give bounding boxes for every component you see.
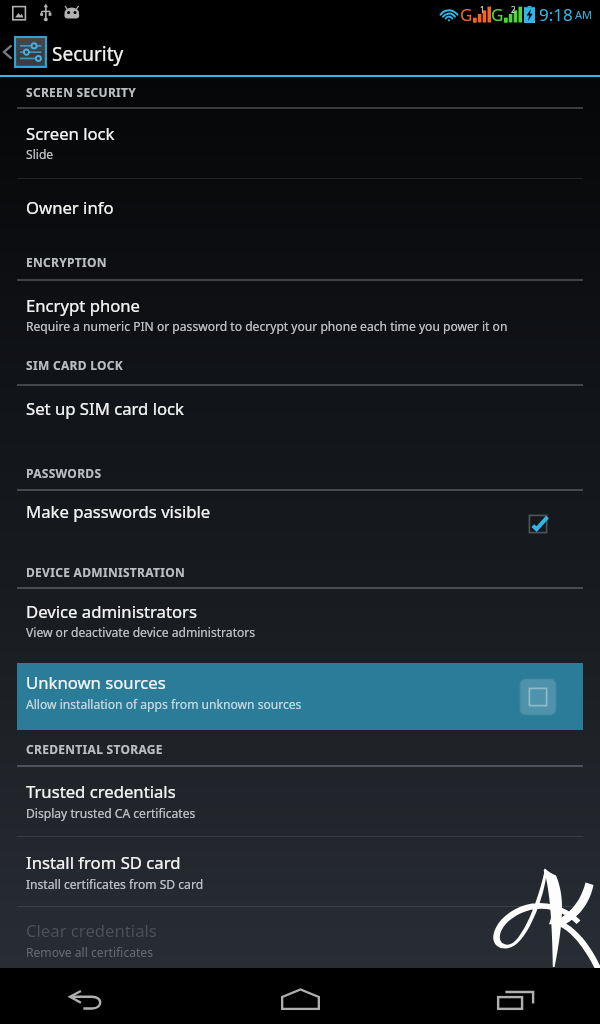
staticText: Display trusted CA certificates [26, 805, 196, 821]
staticText: Security [52, 41, 124, 67]
staticText: Set up SIM card lock [26, 397, 184, 420]
button[interactable] [0, 178, 600, 240]
staticText: SCREEN SECURITY [26, 84, 137, 100]
button[interactable] [0, 386, 600, 450]
button[interactable] [0, 281, 600, 344]
staticText: Remove all certificates [26, 944, 153, 960]
staticText: Install from SD card [26, 851, 181, 874]
button[interactable]: Home [235, 968, 365, 1024]
staticText: 1 [480, 4, 485, 15]
staticText: CREDENTIAL STORAGE [26, 741, 163, 757]
staticText: Trusted credentials [26, 780, 176, 803]
staticText: Install certificates from SD card [26, 876, 204, 892]
button[interactable]: Make passwords visible [514, 500, 562, 548]
staticText: 9:18 [539, 3, 573, 26]
button[interactable] [17, 663, 583, 730]
staticText: Clear credentials [26, 919, 157, 942]
button[interactable]: Unknown sources [514, 673, 562, 721]
staticText: Device administrators [26, 600, 197, 623]
staticText: Allow installation of apps from unknown … [26, 696, 302, 712]
button[interactable] [0, 589, 600, 656]
staticText: PASSWORDS [26, 465, 102, 481]
staticText: Encrypt phone [26, 294, 141, 317]
button[interactable] [0, 490, 600, 552]
button[interactable] [0, 908, 600, 967]
button[interactable]: Recent apps [450, 968, 580, 1024]
staticText: Owner info [26, 196, 114, 219]
button[interactable]: Navigate up, Security [0, 28, 200, 75]
staticText: Slide [26, 146, 54, 162]
staticText: Unknown sources [26, 671, 166, 694]
staticText: Require a numeric PIN or password to dec… [26, 318, 508, 334]
staticText: Screen lock [26, 122, 115, 145]
staticText: AM [575, 7, 593, 22]
staticText: SIM CARD LOCK [26, 357, 124, 373]
staticText: Make passwords visible [26, 500, 211, 523]
staticText: G [460, 3, 473, 26]
staticText: View or deactivate device administrators [26, 624, 256, 640]
staticText: G [491, 3, 504, 26]
staticText: 2 [511, 4, 516, 15]
button[interactable] [0, 109, 600, 176]
staticText: DEVICE ADMINISTRATION [26, 564, 186, 580]
staticText: ENCRYPTION [26, 254, 107, 270]
button[interactable] [0, 837, 600, 906]
button[interactable]: Back [20, 968, 150, 1024]
button[interactable] [0, 766, 600, 835]
